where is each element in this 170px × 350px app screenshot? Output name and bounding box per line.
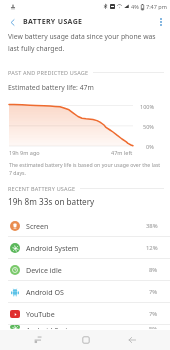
button[interactable]: More options xyxy=(152,12,170,32)
staticText: RECENT BATTERY USAGE xyxy=(8,185,76,192)
staticText: BATTERY USAGE xyxy=(23,17,83,27)
staticText: PAST AND PREDICTED USAGE xyxy=(8,69,89,76)
button[interactable]: Android System xyxy=(0,237,170,258)
staticText: 19h 9m ago xyxy=(9,149,40,156)
staticText: 38% xyxy=(146,222,158,230)
button[interactable]: Screen xyxy=(0,215,170,236)
staticText: 47m left xyxy=(111,149,133,156)
staticText: 5% xyxy=(149,325,158,329)
staticText: Screen xyxy=(26,221,49,231)
staticText: 7:47 pm xyxy=(146,3,167,10)
staticText: The estimated battery life is based on y… xyxy=(9,161,161,176)
staticText: View battery usage data since your phone… xyxy=(8,32,156,53)
staticText: 0% xyxy=(146,143,154,150)
staticText: Android System xyxy=(26,243,79,253)
staticText: 7% xyxy=(149,310,158,318)
staticText: 100% xyxy=(140,103,155,110)
button[interactable]: Home xyxy=(72,330,100,350)
staticText: 4% xyxy=(131,3,139,10)
button[interactable]: Device idle xyxy=(0,259,170,280)
button[interactable]: Navigate up xyxy=(2,12,22,32)
staticText: 19h 8m 33s on battery xyxy=(8,196,95,207)
button[interactable]: Android System xyxy=(0,325,170,329)
button[interactable]: YouTube xyxy=(0,303,170,324)
staticText: Android System xyxy=(26,325,79,329)
staticText: YouTube xyxy=(26,309,55,319)
staticText: 50% xyxy=(143,123,154,130)
staticText: Device idle xyxy=(26,265,62,275)
staticText: 7% xyxy=(149,288,158,296)
button[interactable]: Android OS xyxy=(0,281,170,302)
staticText: 8% xyxy=(149,266,158,274)
button[interactable]: Recent apps xyxy=(24,330,52,350)
staticText: 12% xyxy=(146,244,158,252)
staticText: Android OS xyxy=(26,287,64,297)
button[interactable]: Back xyxy=(118,330,146,350)
staticText: Estimated battery life: 47m xyxy=(8,83,94,92)
